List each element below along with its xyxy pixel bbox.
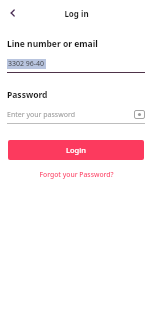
staticText: Enter your password (7, 110, 134, 120)
staticText: Forgot your Password? (39, 170, 114, 179)
staticText: Line number or email (7, 38, 98, 50)
staticText: 3302 96-40 (8, 59, 45, 69)
button[interactable]: Forgot your Password? (33, 168, 120, 181)
button[interactable]: Login (8, 140, 144, 160)
button[interactable]: Enter your password (7, 108, 145, 121)
button[interactable]: Show password (134, 110, 145, 119)
button[interactable]: 3302 96-40 (7, 58, 145, 70)
staticText: Log in (64, 8, 89, 19)
staticText: Password (7, 89, 48, 101)
staticText: Login (66, 145, 86, 155)
button[interactable]: Back (4, 4, 22, 22)
